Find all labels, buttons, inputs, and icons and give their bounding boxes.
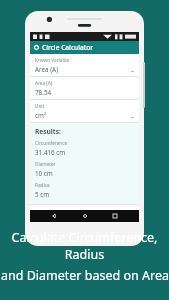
button[interactable]: Recent apps — [108, 210, 122, 222]
staticText: Unit — [35, 103, 45, 109]
staticText: Diameter — [35, 161, 56, 167]
button[interactable]: Known Variable — [30, 54, 139, 76]
staticText: Circle Calculator — [42, 43, 94, 52]
staticText: Area (A) — [35, 80, 53, 86]
staticText: and Diameter based on Area — [1, 267, 169, 284]
button[interactable]: Back — [47, 210, 61, 222]
staticText: 31.416 cm — [35, 148, 66, 157]
button[interactable]: Unit — [30, 100, 139, 122]
staticText: 78.54 — [35, 88, 52, 97]
staticText: Area (A) — [35, 65, 59, 74]
staticText: 5 cm — [35, 190, 50, 199]
staticText: 10 cm — [35, 169, 53, 178]
staticText: Calculate Circumference, Radius — [0, 229, 169, 263]
button[interactable]: App icon — [30, 41, 139, 54]
button[interactable]: Home — [78, 210, 92, 222]
staticText: Circumference — [35, 140, 68, 146]
staticText: Known Variable — [35, 57, 70, 63]
staticText: Results: — [35, 127, 61, 136]
staticText: cm² — [35, 111, 47, 120]
staticText: Radius — [35, 182, 50, 188]
other: App icon — [34, 45, 39, 50]
button[interactable]: Area (A) — [30, 77, 139, 99]
